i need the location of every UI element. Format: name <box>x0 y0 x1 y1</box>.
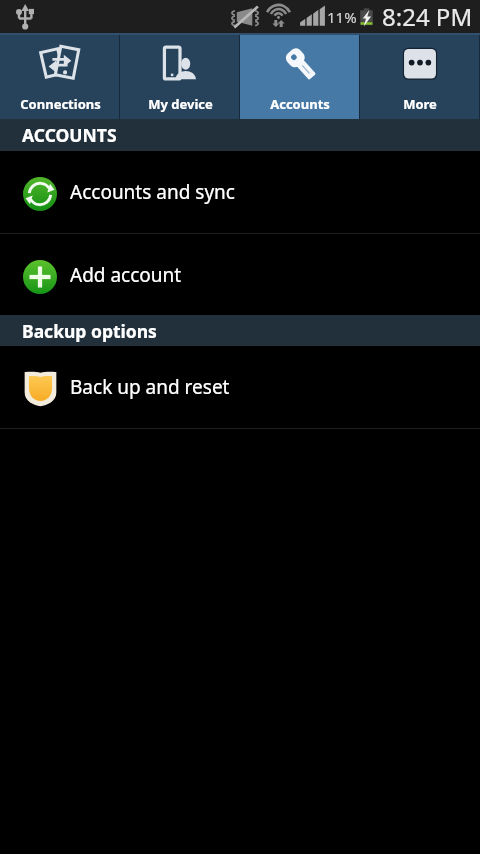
staticText: My device <box>148 95 213 113</box>
staticText: Back up and reset <box>70 374 230 400</box>
button[interactable]: Connections <box>0 33 120 119</box>
button[interactable]: Add account <box>0 234 480 315</box>
staticText: Backup options <box>22 319 157 343</box>
button[interactable]: Accounts <box>240 33 360 119</box>
staticText: 11% <box>327 7 357 27</box>
button[interactable]: Accounts and sync <box>0 151 480 233</box>
staticText: More <box>403 95 437 113</box>
staticText: ACCOUNTS <box>22 123 117 147</box>
staticText: Add account <box>70 262 182 288</box>
staticText: Accounts <box>270 95 330 113</box>
button[interactable]: My device <box>120 33 240 119</box>
staticText: Accounts and sync <box>70 179 235 205</box>
button[interactable]: More <box>360 33 480 119</box>
staticText: 8:24 PM <box>382 0 473 33</box>
button[interactable]: Back up and reset <box>0 346 480 428</box>
staticText: Connections <box>20 95 101 113</box>
